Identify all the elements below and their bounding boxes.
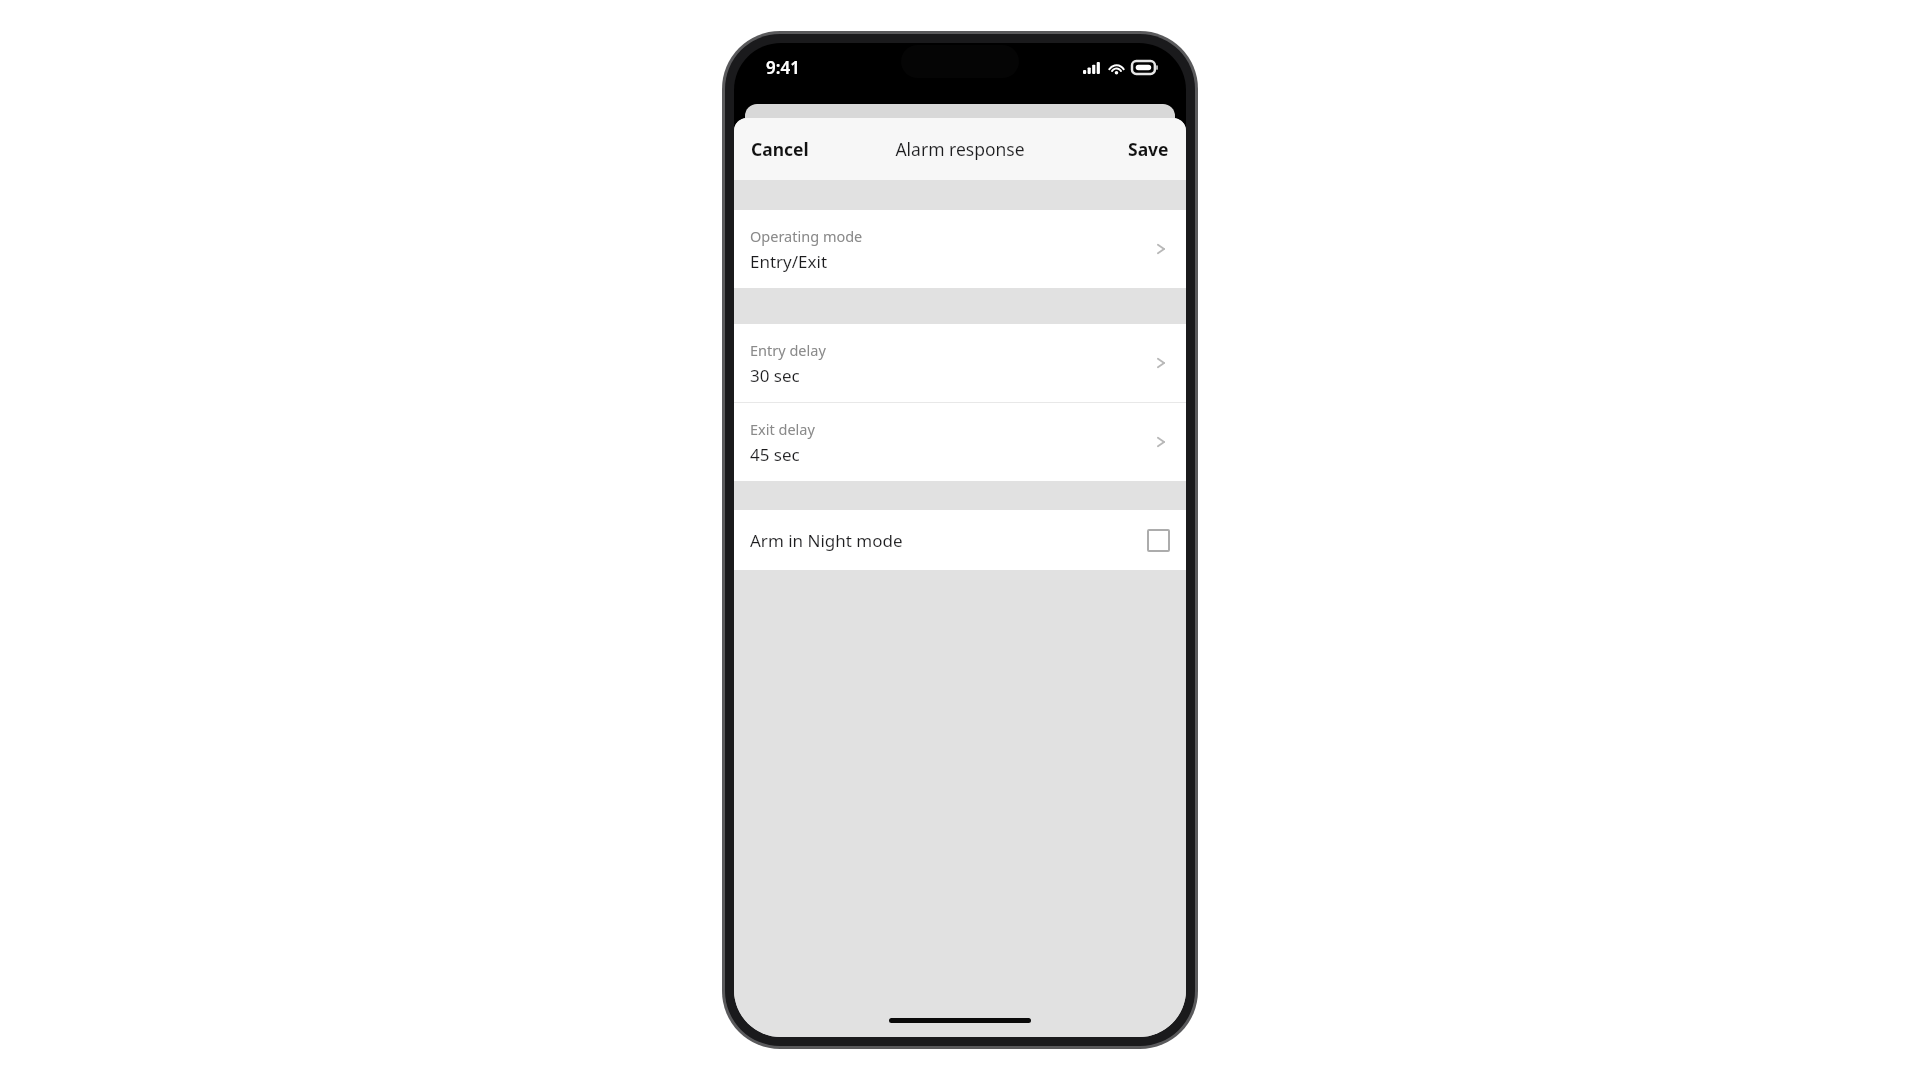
staticText: Arm in Night mode [750, 529, 1147, 552]
button[interactable]: Exit delay [734, 403, 1186, 481]
other: Arm in Night mode checkbox [1147, 529, 1170, 552]
button[interactable]: Cancel [734, 118, 826, 180]
staticText: Alarm response [895, 137, 1025, 161]
staticText: 9:41 [766, 56, 800, 79]
button[interactable]: Save [1111, 118, 1186, 180]
staticText: Save [1128, 137, 1169, 161]
staticText: Entry/Exit [750, 250, 828, 273]
staticText: 45 sec [750, 443, 800, 466]
staticText: Cancel [751, 137, 809, 161]
staticText: Entry delay [750, 340, 826, 360]
staticText: Exit delay [750, 419, 815, 439]
staticText: Operating mode [750, 226, 863, 246]
staticText: 30 sec [750, 364, 800, 387]
button[interactable]: Entry delay [734, 324, 1186, 402]
button[interactable]: Operating mode [734, 210, 1186, 288]
button[interactable]: Arm in Night mode [734, 510, 1186, 570]
